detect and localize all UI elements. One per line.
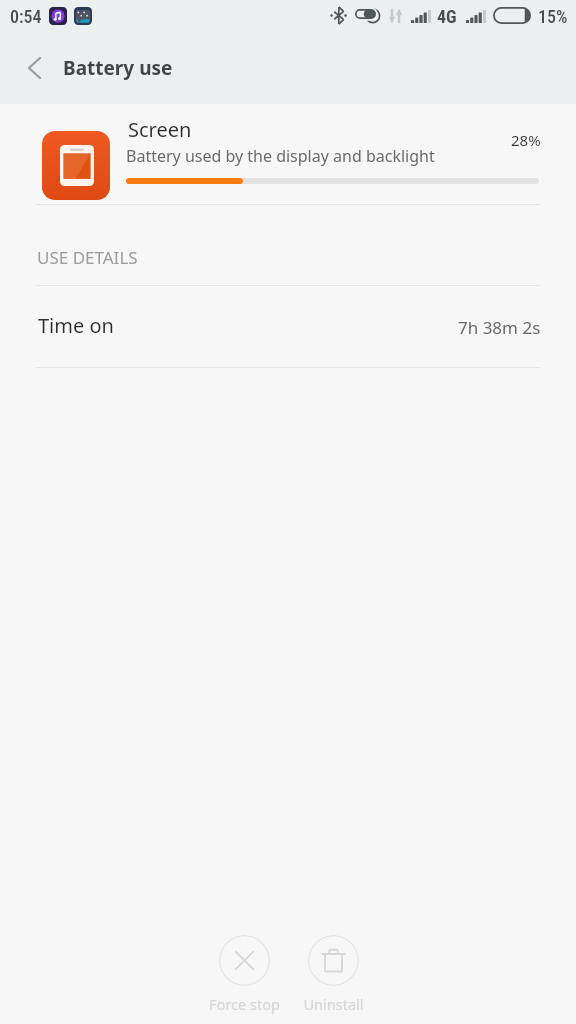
staticText: Uninstall bbox=[303, 994, 364, 1014]
staticText: 7h 38m 2s bbox=[458, 316, 541, 339]
staticText: Screen bbox=[128, 116, 192, 143]
staticText: USE DETAILS bbox=[37, 246, 138, 269]
button[interactable]: Uninstall bbox=[289, 930, 377, 1014]
staticText: 0:54 bbox=[10, 6, 42, 27]
staticText: 28% bbox=[511, 130, 541, 150]
staticText: 15% bbox=[538, 6, 568, 27]
staticText: 4G bbox=[437, 6, 457, 27]
button[interactable]: Force stop bbox=[200, 930, 288, 1014]
button[interactable]: Time on bbox=[0, 286, 576, 367]
staticText: Time on bbox=[38, 312, 114, 339]
button[interactable]: Back bbox=[6, 40, 62, 96]
staticText: Force stop bbox=[209, 994, 280, 1014]
staticText: Battery used by the display and backligh… bbox=[126, 145, 435, 167]
staticText: Battery use bbox=[63, 55, 173, 81]
